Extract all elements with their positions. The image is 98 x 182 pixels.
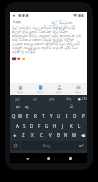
button[interactable]: Emoji [11,141,20,150]
staticText: H [53,123,57,129]
button[interactable]: T [39,111,47,121]
button[interactable]: G [43,121,51,130]
button[interactable]: මිතු [60,95,77,102]
button[interactable]: Home [44,154,53,163]
staticText: ව [70,105,74,109]
button[interactable]: W [17,111,24,121]
staticText: S [23,123,26,129]
staticText: පිටුව [75,91,81,94]
button[interactable]: මුල් [10,95,26,102]
staticText: K [70,123,73,129]
staticText: මුදු [33,97,37,100]
button[interactable]: මුතු [43,95,60,102]
button[interactable]: Enter [75,141,86,150]
button[interactable]: Shift [10,130,19,140]
button[interactable]: සිංහල [21,141,74,150]
staticText: පිටුව [37,91,43,94]
button[interactable]: P [79,111,87,121]
button[interactable]: F [35,121,43,130]
button[interactable]: E [24,111,31,121]
staticText: L [78,123,81,129]
button[interactable]: Q [10,111,17,121]
button[interactable]: පිටුව [68,83,87,95]
staticText: 123 [82,97,87,101]
staticText: G [45,123,49,129]
button[interactable]: මුදු [26,95,43,102]
staticText: C [40,132,43,138]
staticText: මුල් [15,97,21,100]
staticText: M [72,132,76,138]
button[interactable]: L [75,121,83,130]
staticText: P [82,113,85,119]
button[interactable]: U [55,111,63,121]
button[interactable]: N [62,130,70,140]
button[interactable]: O [71,111,79,121]
button[interactable]: M [70,130,78,140]
button[interactable]: මුල් පිටුවත [50,19,74,25]
staticText: T [42,113,45,119]
staticText: මුතු [49,97,55,100]
button[interactable]: R [31,111,39,121]
staticText: Copy [13,19,21,24]
staticText: ආ [16,105,20,109]
staticText: මුල් අමුතුව වැල අපිමදි සිතින් නිවැරදි අල… [12,25,83,55]
button[interactable]: Y [47,111,55,121]
button[interactable]: I [63,111,71,121]
staticText: N [64,132,68,138]
staticText: E [26,113,29,119]
staticText: F [38,123,41,129]
button[interactable]: Recents [66,154,75,163]
staticText: මිතු [66,97,72,100]
staticText: V [49,132,52,138]
staticText: W [18,113,23,119]
staticText: O [73,113,77,119]
button[interactable]: S [21,121,28,130]
button[interactable]: Z [19,130,28,140]
button[interactable]: පිටුව [30,83,49,95]
button[interactable]: X [28,130,37,140]
staticText: Q [12,113,16,119]
button[interactable]: J [59,121,67,130]
button[interactable]: 123 [77,95,87,102]
button[interactable]: පිටුව [10,83,30,95]
staticText: පිටුව [17,91,23,94]
staticText: U [57,113,61,119]
button[interactable]: Copy [10,18,23,25]
staticText: X [31,132,34,138]
staticText: A [16,123,19,129]
button[interactable]: A [14,121,21,130]
button[interactable]: H [51,121,59,130]
staticText: ඇ [25,105,29,109]
staticText: Y [50,113,53,119]
staticText: R [34,113,37,119]
staticText: සිංහල [43,144,52,147]
button[interactable]: Back [23,154,32,163]
staticText: මුල් පිටුවත [51,19,73,25]
staticText: D [30,123,34,129]
button[interactable]: B [54,130,62,140]
button[interactable]: V [46,130,54,140]
button[interactable]: පිටුව [49,83,68,95]
staticText: Z [22,132,25,138]
staticText: B [57,132,60,138]
button[interactable]: K [67,121,75,130]
staticText: J [62,123,64,129]
staticText: I [66,113,68,119]
button[interactable]: D [28,121,35,130]
staticText: පිටුව [56,91,62,94]
button[interactable]: Backspace [78,130,87,140]
button[interactable]: C [37,130,46,140]
